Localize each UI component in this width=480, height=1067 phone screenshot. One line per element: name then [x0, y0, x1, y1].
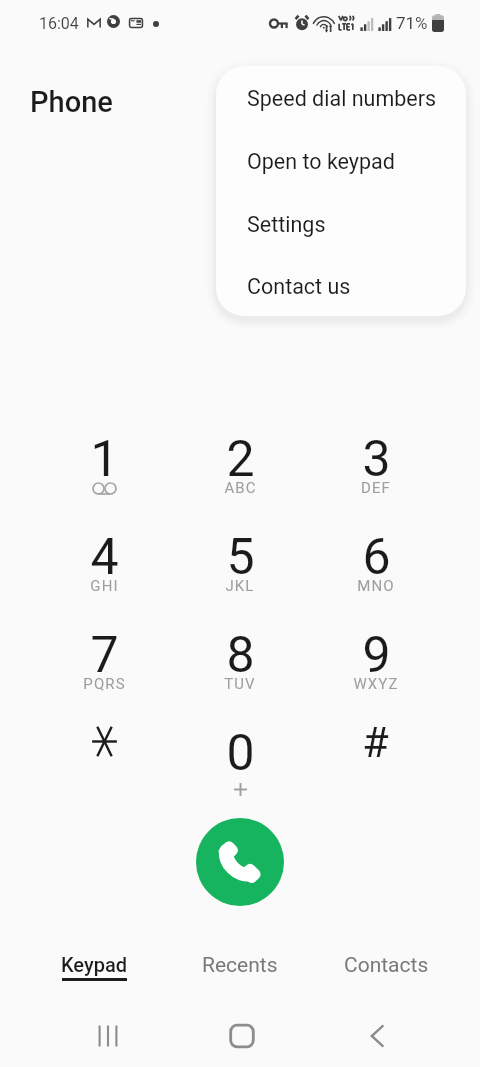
staticText: 9 [362, 626, 391, 685]
button[interactable]: Back [320, 1000, 480, 1067]
staticText: 4 [90, 528, 119, 587]
staticText: 2 [226, 430, 255, 489]
staticText: Open to keypad [247, 149, 395, 174]
button[interactable]: # [308, 722, 444, 820]
staticText: # [362, 717, 389, 767]
staticText: Settings [247, 212, 326, 237]
staticText: DEF [361, 479, 391, 497]
staticText: TUV [224, 675, 256, 693]
staticText: Phone [30, 85, 113, 119]
button[interactable]: Keypad [16, 942, 172, 1000]
button[interactable]: Contact us [216, 255, 466, 316]
button[interactable]: 0 [172, 722, 308, 820]
button[interactable]: Recent apps [0, 1000, 160, 1067]
staticText: 16:04 [39, 14, 79, 33]
staticText: MNO [357, 577, 395, 595]
button[interactable]: 4 [36, 526, 172, 624]
button[interactable]: Settings [216, 192, 466, 255]
staticText: 1 [90, 430, 119, 489]
button[interactable] [36, 722, 172, 820]
button[interactable]: 8 [172, 624, 308, 722]
button[interactable]: Recents [166, 942, 314, 1000]
button[interactable]: Contacts [312, 942, 460, 1000]
button[interactable]: Call [196, 818, 284, 906]
button[interactable]: 2 [172, 428, 308, 526]
button[interactable]: 1 [36, 428, 172, 526]
button[interactable]: 5 [172, 526, 308, 624]
staticText: 5 [226, 528, 255, 587]
staticText: Keypad [61, 953, 128, 976]
staticText: JKL [225, 577, 255, 595]
button[interactable]: 7 [36, 624, 172, 722]
staticText: 8 [226, 626, 255, 685]
staticText: Contact us [247, 274, 351, 299]
button[interactable]: 3 [308, 428, 444, 526]
staticText: Speed dial numbers [247, 86, 437, 111]
staticText: GHI [90, 577, 119, 595]
staticText: Contacts [344, 953, 429, 978]
button[interactable]: 9 [308, 624, 444, 722]
staticText: 3 [362, 430, 391, 489]
staticText: ABC [224, 479, 257, 497]
staticText: PQRS [83, 675, 126, 693]
button[interactable]: Home [160, 1000, 320, 1067]
staticText: Recents [202, 953, 278, 978]
staticText: 7 [90, 626, 119, 685]
button[interactable]: 6 [308, 526, 444, 624]
button[interactable]: Speed dial numbers [216, 66, 466, 129]
staticText: 6 [362, 528, 391, 587]
staticText: 71% [396, 13, 428, 33]
staticText: 0 [226, 724, 255, 783]
button[interactable]: Open to keypad [216, 129, 466, 192]
staticText: WXYZ [353, 675, 399, 693]
